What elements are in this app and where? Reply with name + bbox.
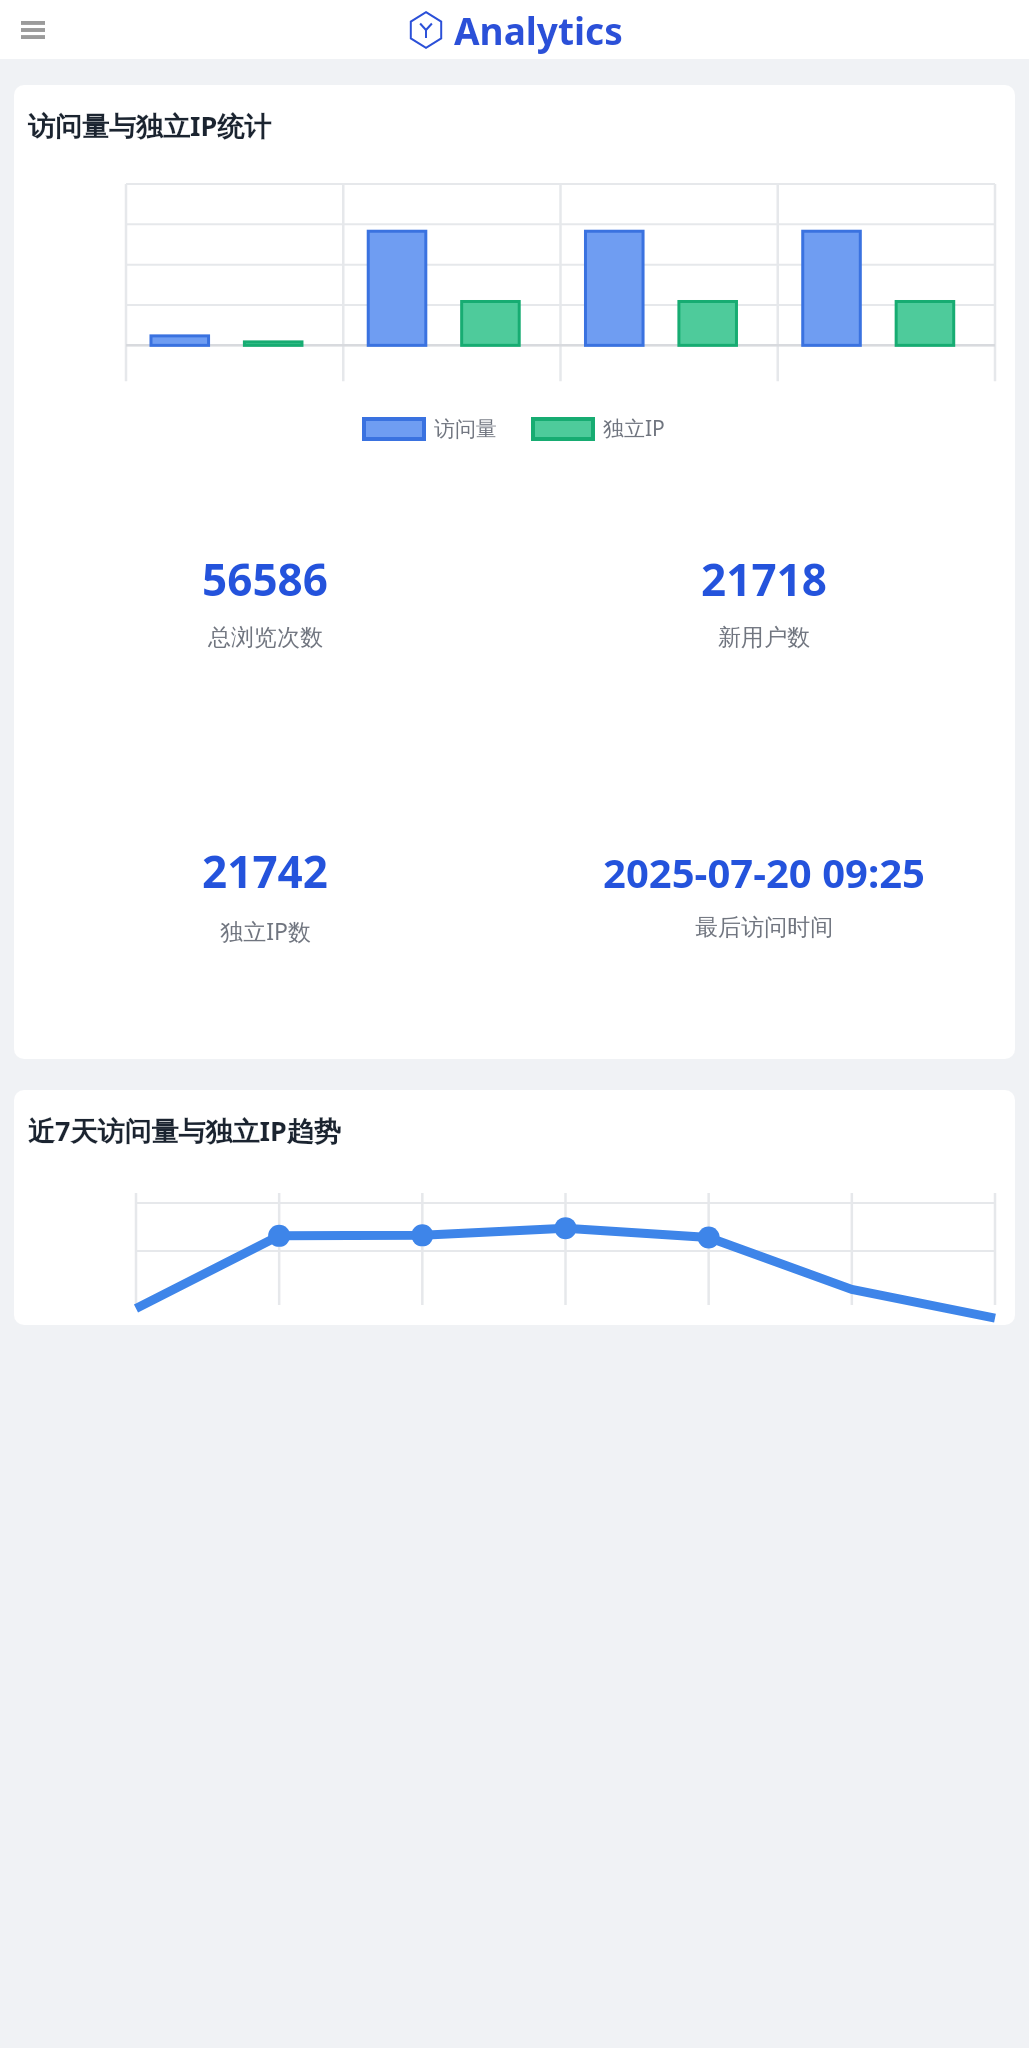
staticText: 21742 xyxy=(202,841,328,901)
staticText: 56586 xyxy=(202,549,328,609)
staticText: 独立IP xyxy=(603,414,665,443)
button[interactable]: Menu xyxy=(10,7,56,53)
staticText: 近7天访问量与独立IP趋势 xyxy=(28,1112,341,1149)
staticText: 2025-07-20 09:25 xyxy=(603,845,925,899)
staticText: 访问量 xyxy=(434,416,497,442)
staticText: 新用户数 xyxy=(718,623,810,652)
staticText: 最后访问时间 xyxy=(695,913,833,942)
staticText: 独立IP数 xyxy=(220,915,311,946)
staticText: 21718 xyxy=(701,549,827,609)
button[interactable]: 21718 xyxy=(533,489,995,711)
button[interactable]: 2025-07-20 09:25 xyxy=(533,747,995,1039)
staticText: 访问量与独立IP统计 xyxy=(28,107,272,144)
button[interactable]: 21742 xyxy=(34,747,495,1039)
staticText: 总浏览次数 xyxy=(208,623,323,652)
button[interactable]: 56586 xyxy=(34,489,495,711)
button[interactable]: 访问量 xyxy=(364,416,497,442)
staticText: Analytics xyxy=(454,5,623,55)
button[interactable]: 独立IP xyxy=(533,414,665,443)
